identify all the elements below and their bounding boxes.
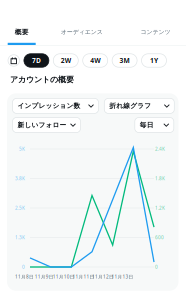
button[interactable]: インプレッション数 bbox=[12, 98, 98, 113]
staticText: 1.3K bbox=[15, 234, 25, 241]
button[interactable]: 3M bbox=[112, 54, 137, 67]
staticText: 0 bbox=[155, 264, 158, 270]
staticText: コンテンツ bbox=[140, 28, 170, 36]
staticText: 新しいフォロー bbox=[17, 121, 66, 129]
staticText: 概要 bbox=[15, 28, 29, 36]
staticText: 2.5K bbox=[15, 205, 25, 211]
staticText: 3M bbox=[120, 56, 130, 65]
staticText: 11月13日 bbox=[112, 274, 134, 280]
staticText: オーディエンス bbox=[61, 28, 103, 36]
button[interactable]: 折れ線グラフ bbox=[104, 98, 174, 113]
staticText: 600 bbox=[155, 234, 164, 241]
button[interactable]: 1Y bbox=[141, 54, 166, 67]
staticText: 4W bbox=[90, 56, 100, 65]
button[interactable]: コンテンツ bbox=[124, 28, 186, 45]
staticText: 5K bbox=[19, 146, 25, 152]
button[interactable]: Choose custom date range bbox=[8, 55, 19, 66]
button[interactable]: 7D bbox=[24, 54, 49, 67]
button[interactable]: 概要 bbox=[0, 28, 53, 45]
staticText: 11月8日 bbox=[15, 274, 34, 280]
staticText: 11月12日 bbox=[92, 274, 114, 280]
button[interactable]: 4W bbox=[83, 54, 108, 67]
staticText: 7D bbox=[32, 56, 41, 65]
staticText: 2.4K bbox=[155, 146, 165, 152]
staticText: 0 bbox=[22, 264, 25, 270]
staticText: 11月9日 bbox=[35, 274, 54, 280]
staticText: 折れ線グラフ bbox=[109, 102, 151, 110]
staticText: アカウントの概要 bbox=[10, 74, 74, 85]
staticText: 1Y bbox=[150, 56, 158, 65]
staticText: 11月11日 bbox=[72, 274, 94, 280]
staticText: 1.8K bbox=[155, 175, 165, 182]
button[interactable]: 2W bbox=[53, 54, 78, 67]
staticText: 11月10日 bbox=[53, 274, 75, 280]
staticText: 毎日 bbox=[140, 121, 154, 129]
button[interactable]: 新しいフォロー bbox=[12, 117, 80, 132]
staticText: 3.8K bbox=[15, 175, 25, 182]
staticText: 2W bbox=[61, 56, 71, 65]
button[interactable]: 毎日 bbox=[135, 117, 174, 132]
staticText: 1.2K bbox=[155, 205, 165, 211]
staticText: インプレッション数 bbox=[17, 102, 80, 110]
button[interactable]: オーディエンス bbox=[51, 28, 113, 45]
